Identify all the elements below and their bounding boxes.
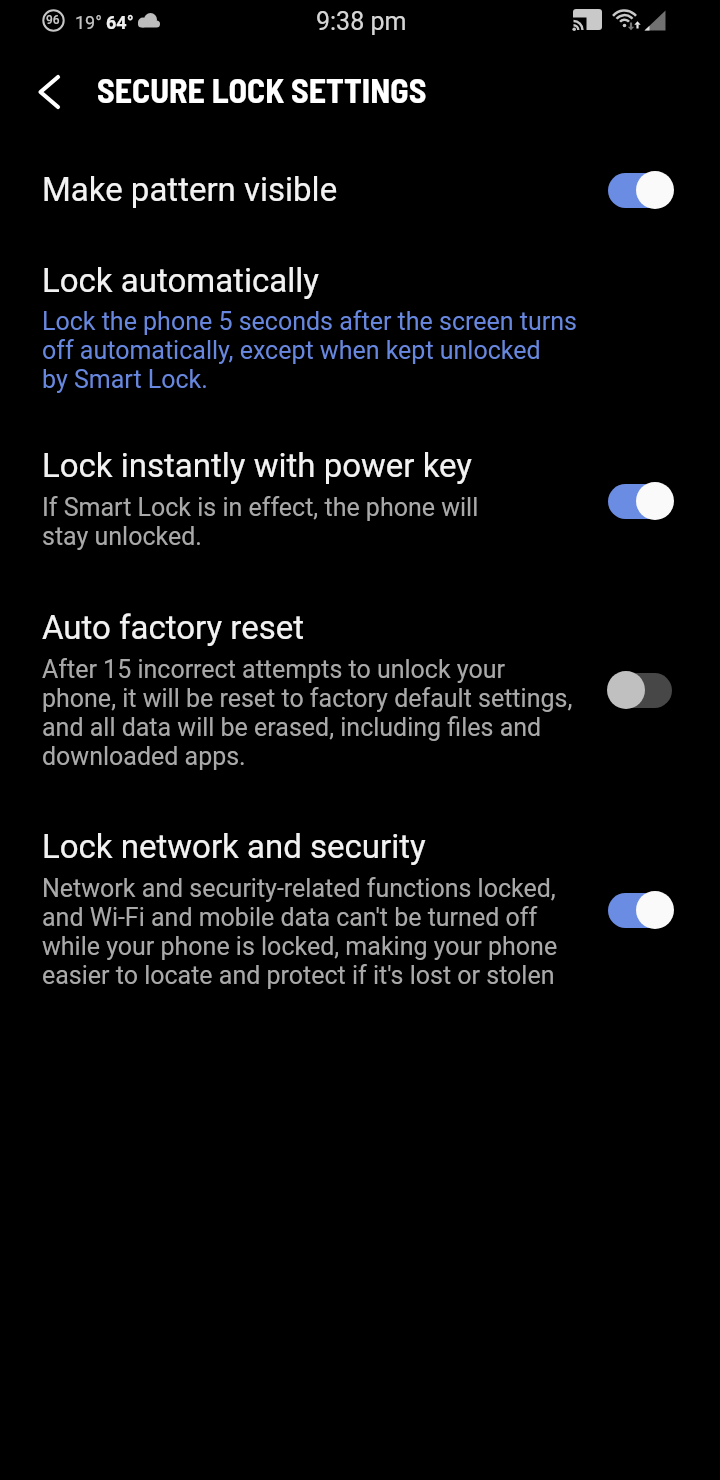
button[interactable]: Auto factory reset: [0, 580, 720, 800]
staticText: 9:38 pm: [316, 7, 407, 36]
button[interactable]: [607, 671, 677, 709]
staticText: 96: [46, 13, 60, 27]
staticText: Lock network and security: [42, 827, 426, 866]
button[interactable]: [607, 891, 677, 929]
button[interactable]: Lock network and security: [0, 800, 720, 1010]
staticText: If Smart Lock is in effect, the phone wi…: [42, 493, 479, 551]
button[interactable]: Lock instantly with power key: [0, 418, 720, 580]
button[interactable]: [24, 61, 72, 109]
staticText: Network and security-related functions l…: [42, 874, 558, 990]
staticText: Lock the phone 5 seconds after the scree…: [42, 307, 577, 394]
staticText: Lock automatically: [42, 261, 319, 300]
staticText: SECURE LOCK SETTINGS: [97, 69, 427, 110]
staticText: Lock instantly with power key: [42, 446, 472, 485]
button[interactable]: [607, 482, 677, 520]
staticText: After 15 incorrect attempts to unlock yo…: [42, 655, 573, 771]
button[interactable]: [607, 171, 677, 209]
button[interactable]: Make pattern visible: [0, 138, 720, 238]
staticText: Auto factory reset: [42, 608, 304, 647]
staticText: 19°: [75, 12, 102, 33]
button[interactable]: Lock automatically: [0, 238, 720, 418]
staticText: 64°: [106, 12, 134, 33]
staticText: Make pattern visible: [42, 170, 338, 209]
